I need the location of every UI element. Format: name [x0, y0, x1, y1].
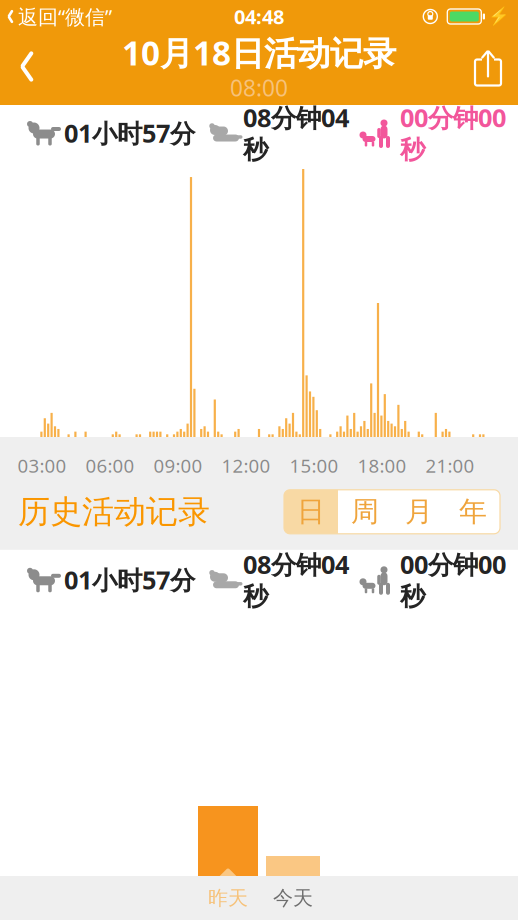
staticText: 03:00 [17, 453, 66, 478]
staticText: 08分钟04秒 [243, 547, 349, 612]
staticText: 01小时57分 [64, 116, 195, 150]
button[interactable]: 周 [338, 490, 392, 534]
button[interactable]: 分享 [458, 39, 518, 93]
staticText: 01小时57分 [64, 563, 195, 597]
button[interactable]: 返回“微信” [0, 3, 112, 30]
staticText: 21:00 [425, 453, 474, 478]
staticText: 历史活动记录 [18, 492, 210, 531]
button[interactable]: 日 [284, 490, 338, 534]
staticText: ⚡ [488, 7, 510, 26]
staticText: 10月18日活动记录 [122, 30, 396, 75]
staticText: 08分钟04秒 [243, 101, 349, 165]
button[interactable]: 昨天 [198, 881, 258, 915]
staticText: 日 [297, 495, 325, 529]
staticText: 返回“微信” [18, 3, 112, 30]
button[interactable]: 年 [446, 490, 500, 534]
staticText: 月 [405, 495, 433, 529]
staticText: 18:00 [357, 453, 406, 478]
staticText: 09:00 [153, 453, 202, 478]
staticText: 06:00 [85, 453, 134, 478]
staticText: 年 [459, 495, 487, 529]
button[interactable]: 返回 [0, 39, 54, 93]
staticText: 12:00 [221, 453, 270, 478]
staticText: 15:00 [289, 453, 338, 478]
staticText: 周 [351, 495, 379, 529]
staticText: 00分钟00秒 [400, 547, 506, 612]
staticText: 04:48 [234, 3, 284, 30]
button[interactable]: 月 [392, 490, 446, 534]
staticText: 昨天 [208, 886, 248, 910]
button[interactable]: 今天 [266, 881, 320, 915]
staticText: 00分钟00秒 [400, 101, 506, 165]
staticText: 今天 [273, 886, 313, 910]
staticText: 08:00 [230, 73, 288, 103]
